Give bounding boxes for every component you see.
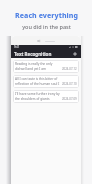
staticText: Reach everything (15, 11, 78, 21)
staticText: the shoulders of giants (15, 97, 50, 101)
staticText: Reading is really the only thing I ever (15, 62, 60, 66)
staticText: 2024-07-09 (62, 97, 77, 101)
staticText: All I can taste is this bitter of though… (15, 77, 60, 81)
button[interactable]: Add (71, 50, 78, 57)
staticText: 2024-07-12 (62, 67, 77, 71)
staticText: reflection of the human soul I am in it (15, 82, 60, 86)
staticText: did well and yet I am expecting differen… (15, 67, 60, 71)
staticText: 2024-07-10 (62, 82, 77, 86)
button[interactable]: Reading is really the only thing I ever (13, 60, 79, 73)
staticText: I'll have some further irony by standing… (15, 92, 60, 96)
staticText: you did in the past (22, 23, 71, 30)
button[interactable]: All I can taste is this bitter of though… (13, 75, 79, 88)
staticText: Text Recognition (14, 51, 71, 57)
staticText: 9:41 (14, 45, 20, 49)
button[interactable]: I'll have some further irony by standing… (13, 90, 79, 103)
